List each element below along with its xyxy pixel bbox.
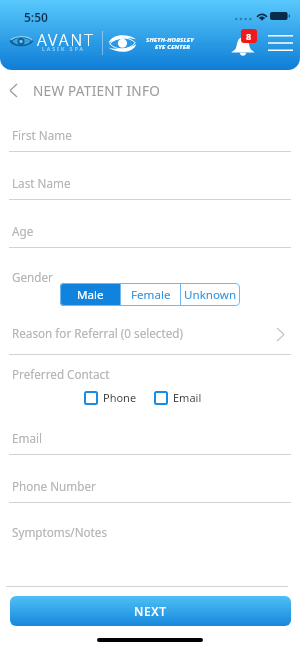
staticText: Male	[77, 287, 104, 303]
button[interactable]: Male	[60, 283, 120, 306]
button[interactable]	[0, 431, 300, 455]
staticText: Age	[12, 223, 34, 239]
button[interactable]	[0, 224, 300, 248]
staticText: Preferred Contact	[12, 366, 110, 382]
staticText: Phone	[103, 390, 137, 405]
staticText: Email	[12, 430, 43, 446]
staticText: 8	[246, 30, 252, 42]
button[interactable]: Notifications	[233, 29, 259, 60]
button[interactable]	[0, 176, 300, 200]
button[interactable]: NEXT	[10, 596, 291, 626]
staticText: NEW PATIENT INFO	[33, 81, 161, 100]
staticText: Unknown	[184, 287, 237, 303]
button[interactable]: Reason for Referral (0 selected)	[0, 322, 300, 348]
staticText: Gender	[12, 269, 53, 285]
staticText: AVANT	[37, 29, 95, 51]
button[interactable]: Phone	[84, 390, 137, 405]
staticText: Symptoms/Notes	[12, 524, 108, 540]
button[interactable]: NEW PATIENT INFO	[4, 78, 184, 102]
button[interactable]: Menu	[268, 34, 293, 51]
button[interactable]	[0, 525, 300, 575]
staticText: SHETH-HORSLEY	[146, 36, 194, 44]
staticText: NEXT	[134, 603, 167, 619]
staticText: LASIK SPA	[42, 45, 85, 52]
staticText: 5:50	[24, 9, 48, 25]
staticText: Female	[131, 287, 171, 303]
button[interactable]	[0, 479, 300, 503]
button[interactable]: Email	[154, 390, 202, 405]
button[interactable]: Female	[121, 283, 180, 306]
staticText: Phone Number	[12, 478, 96, 494]
staticText: Reason for Referral (0 selected)	[12, 325, 183, 341]
staticText: Email	[173, 390, 202, 405]
button[interactable]	[0, 128, 300, 152]
staticText: EYE CENTER	[155, 43, 191, 51]
staticText: First Name	[12, 127, 72, 143]
staticText: Last Name	[12, 175, 71, 191]
button[interactable]: Unknown	[181, 283, 240, 306]
